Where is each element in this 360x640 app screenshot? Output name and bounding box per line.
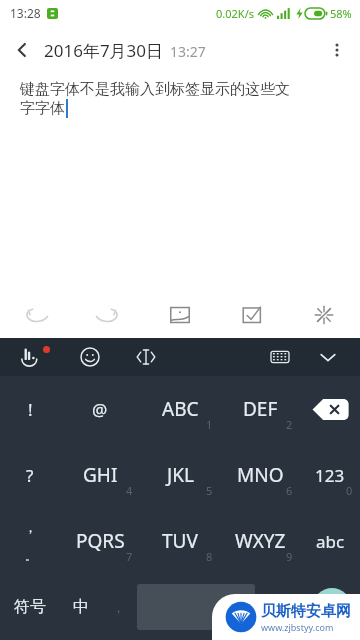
staticText: 13:27 bbox=[170, 42, 206, 61]
button[interactable]: 123 bbox=[300, 442, 360, 508]
button[interactable]: Redo bbox=[72, 292, 144, 338]
button[interactable]: ABC bbox=[140, 376, 220, 442]
staticText: 中 bbox=[73, 597, 89, 617]
button[interactable]: PQRS bbox=[60, 508, 140, 574]
staticText: 2016年7月30日 bbox=[44, 39, 164, 62]
button[interactable]: Checklist bbox=[216, 292, 288, 338]
staticText: 符号 bbox=[14, 597, 46, 617]
staticText: 8 bbox=[206, 549, 213, 564]
button[interactable]: @ bbox=[60, 376, 140, 442]
staticText: 。 bbox=[25, 549, 36, 563]
staticText: ? bbox=[26, 464, 34, 487]
staticText: @ bbox=[92, 398, 108, 421]
staticText: PQRS bbox=[76, 528, 125, 554]
staticText: 6 bbox=[286, 483, 293, 498]
staticText: 1 bbox=[206, 417, 213, 432]
staticText: 键盘字体不是我输入到标签显示的这些文 bbox=[20, 80, 290, 99]
staticText: 2 bbox=[286, 417, 293, 432]
button[interactable]: WXYZ bbox=[220, 508, 300, 574]
staticText: 0.02K/s bbox=[216, 6, 254, 21]
button[interactable]: abc bbox=[300, 508, 360, 574]
staticText: TUV bbox=[162, 528, 198, 554]
button[interactable]: MNO bbox=[220, 442, 300, 508]
button[interactable]: Hide keyboard bbox=[306, 338, 350, 376]
staticText: GHI bbox=[83, 462, 118, 488]
button[interactable]: Back bbox=[0, 28, 44, 72]
button[interactable]: 中 bbox=[60, 574, 102, 640]
button[interactable]: Insert image bbox=[144, 292, 216, 338]
staticText: 58% bbox=[330, 6, 352, 21]
button[interactable]: GHI bbox=[60, 442, 140, 508]
staticText: ， bbox=[112, 599, 125, 615]
button[interactable]: ! bbox=[0, 376, 60, 442]
staticText: 7 bbox=[126, 549, 133, 564]
button[interactable]: Emoticon bbox=[258, 574, 304, 640]
staticText: 13:28 bbox=[10, 5, 41, 21]
button[interactable]: JKL bbox=[140, 442, 220, 508]
staticText: 9 bbox=[286, 549, 293, 564]
button[interactable]: More options bbox=[314, 27, 360, 73]
button[interactable]: ， bbox=[0, 508, 60, 574]
button[interactable]: Emoji bbox=[68, 338, 112, 376]
button[interactable]: Backspace bbox=[300, 376, 360, 442]
staticText: WXYZ bbox=[235, 528, 286, 554]
button[interactable]: Handwriting input bbox=[8, 338, 54, 376]
staticText: 字字体 bbox=[20, 99, 65, 118]
staticText: ， bbox=[24, 519, 37, 535]
staticText: 4 bbox=[126, 483, 133, 498]
staticText: 0 bbox=[346, 483, 353, 498]
button[interactable]: Enter bbox=[304, 574, 360, 640]
button[interactable]: Space bbox=[137, 584, 255, 630]
staticText: JKL bbox=[167, 462, 194, 488]
button[interactable]: 符号 bbox=[0, 574, 60, 640]
staticText: DEF bbox=[243, 396, 278, 422]
staticText: 5 bbox=[206, 483, 213, 498]
button[interactable]: Undo bbox=[0, 292, 72, 338]
staticText: 123 bbox=[315, 464, 345, 487]
button[interactable]: Move cursor bbox=[124, 338, 168, 376]
button[interactable]: DEF bbox=[220, 376, 300, 442]
staticText: 贝斯特安卓网 bbox=[261, 602, 351, 621]
staticText: ABC bbox=[162, 396, 199, 422]
button[interactable]: Effects bbox=[288, 292, 360, 338]
staticText: ! bbox=[28, 398, 33, 421]
staticText: abc bbox=[316, 530, 345, 553]
button[interactable]: Keyboard settings bbox=[258, 338, 302, 376]
button[interactable]: ? bbox=[0, 442, 60, 508]
staticText: MNO bbox=[237, 462, 284, 488]
staticText: www.zjbstyy.com bbox=[261, 621, 334, 633]
button[interactable]: TUV bbox=[140, 508, 220, 574]
